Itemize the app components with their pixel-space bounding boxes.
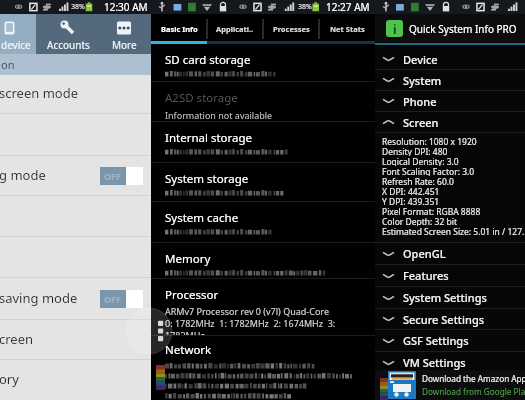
button[interactable]: creen <box>0 320 151 359</box>
staticText: X DPI: 442.451 <box>382 186 440 196</box>
button[interactable]: OpenGL <box>375 243 525 264</box>
staticText: Memory <box>165 251 211 267</box>
button[interactable]: Accounts <box>36 14 106 54</box>
button[interactable]: More options <box>126 308 172 354</box>
staticText: Download the Amazon App <box>422 373 525 384</box>
staticText: screen mode <box>0 84 142 102</box>
button[interactable]: System storage <box>151 163 375 201</box>
staticText: Screen <box>403 115 439 130</box>
button[interactable]: Screen <box>375 112 525 132</box>
button[interactable]: Secure Settings <box>375 309 525 329</box>
staticText: SD card storage <box>165 52 251 68</box>
staticText: More <box>112 38 137 52</box>
staticText: A2SD storage <box>165 90 238 106</box>
staticText: 38% <box>71 2 85 12</box>
button[interactable]: Features <box>375 265 525 286</box>
staticText: OFF <box>104 293 122 305</box>
staticText: Density DPI: 480 <box>382 146 448 156</box>
staticText: saving mode <box>0 289 99 307</box>
button[interactable]: VM Settings <box>375 352 525 373</box>
staticText: System Settings <box>403 290 487 305</box>
button[interactable]: System cache <box>151 202 375 242</box>
button[interactable]: System <box>375 70 525 90</box>
staticText: 1782MHz <box>165 329 205 335</box>
staticText: Net Stats <box>330 24 365 34</box>
staticText: 12:30 AM <box>104 0 148 14</box>
button[interactable]: Processes <box>263 14 319 44</box>
button[interactable]: g mode <box>0 156 151 195</box>
staticText: creen <box>0 330 142 348</box>
button[interactable]: System Settings <box>375 287 525 308</box>
button[interactable]: i <box>375 14 525 43</box>
button[interactable]: ory <box>0 360 151 400</box>
staticText: on <box>1 57 15 72</box>
staticText: g mode <box>0 166 99 184</box>
staticText: System <box>403 73 442 88</box>
staticText: Features <box>403 268 449 283</box>
staticText: GSF Settings <box>403 333 469 348</box>
button[interactable]: Basic Info <box>151 14 207 44</box>
staticText: Basic Info <box>161 24 198 34</box>
staticText: Phone <box>403 94 437 109</box>
staticText: Information not available <box>165 109 273 121</box>
staticText: VM Settings <box>403 355 466 370</box>
button[interactable]: Memory <box>151 243 375 278</box>
staticText: OFF <box>104 170 122 182</box>
button[interactable]: saving mode <box>0 278 151 319</box>
staticText: Y DPI: 439.351 <box>382 196 440 206</box>
staticText: ARMv7 Processor rev 0 (v7l) Quad-Core <box>165 305 329 317</box>
button[interactable]: Applicati.. <box>207 14 263 44</box>
button[interactable]: SD card storage <box>151 44 375 81</box>
staticText: OpenGL <box>403 246 446 261</box>
staticText: Quick System Info PRO <box>409 22 517 36</box>
button[interactable]: Net Stats <box>319 14 375 44</box>
button[interactable]: screen mode <box>0 75 151 113</box>
staticText: Refresh Rate: 60.0 <box>382 176 454 186</box>
staticText: Font Scaling Factor: 3.0 <box>382 166 475 176</box>
staticText: Internal storage <box>165 130 253 146</box>
staticText: Applicati.. <box>216 24 254 34</box>
button[interactable]: A2SD storage <box>151 82 375 121</box>
button[interactable]: GSF Settings <box>375 330 525 351</box>
staticText: 0: 1782MHz 1: 1782MHz 2: 1674MHz 3: <box>165 317 336 329</box>
staticText: Download from Google Play <box>422 386 525 397</box>
staticText: 38% <box>298 2 312 12</box>
staticText: Processor <box>165 287 219 303</box>
staticText: Logical Density: 3.0 <box>382 156 459 166</box>
staticText: ory <box>0 370 142 388</box>
staticText: Color Depth: 32 bit <box>382 216 458 226</box>
staticText: Accounts <box>47 38 90 52</box>
staticText: System cache <box>165 210 239 226</box>
staticText: Device <box>403 52 438 67</box>
button[interactable]: Download the Amazon App <box>375 370 525 400</box>
staticText: Network <box>165 342 212 358</box>
staticText: Pixel Format: RGBA 8888 <box>382 206 481 216</box>
staticText: Resolution: 1080 x 1920 <box>382 136 477 146</box>
button[interactable]: Phone <box>375 91 525 111</box>
button[interactable]: More <box>106 14 151 54</box>
staticText: 12:27 AM <box>326 0 370 14</box>
staticText: Secure Settings <box>403 312 485 327</box>
button[interactable]: Processor <box>151 279 375 335</box>
staticText: System storage <box>165 171 249 187</box>
staticText: Estimated Screen Size: 5.01 in / 127. <box>382 226 525 236</box>
staticText: device <box>1 38 31 52</box>
button[interactable]: Device <box>375 49 525 69</box>
button[interactable]: Internal storage <box>151 122 375 162</box>
staticText: i <box>393 21 397 37</box>
staticText: Processes <box>273 24 310 34</box>
button[interactable]: device <box>0 14 36 54</box>
